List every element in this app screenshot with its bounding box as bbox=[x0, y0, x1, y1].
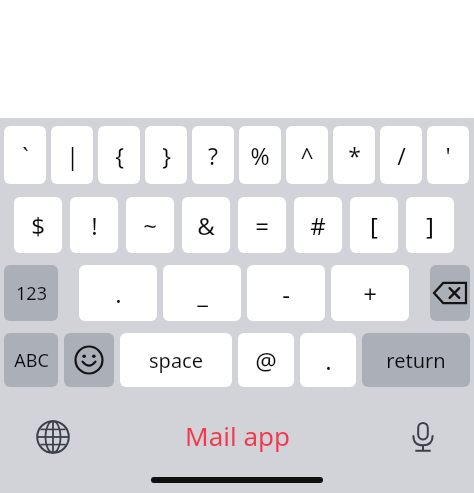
staticText: . bbox=[115, 277, 122, 310]
staticText: - bbox=[282, 277, 290, 310]
staticText: & bbox=[197, 209, 215, 242]
button[interactable]: ' bbox=[427, 126, 469, 184]
staticText: * bbox=[348, 140, 361, 171]
staticText: ` bbox=[22, 140, 29, 171]
staticText: % bbox=[250, 140, 270, 171]
staticText: { bbox=[115, 140, 124, 171]
button[interactable]: % bbox=[239, 126, 281, 184]
staticText: @ bbox=[255, 344, 277, 377]
button[interactable]: / bbox=[380, 126, 422, 184]
staticText: ' bbox=[445, 140, 451, 171]
button[interactable]: & bbox=[182, 197, 230, 253]
button[interactable]: Mail app bbox=[185, 418, 290, 453]
staticText: . bbox=[325, 344, 332, 377]
button[interactable]: - bbox=[247, 265, 325, 321]
staticText: _ bbox=[197, 277, 208, 310]
staticText: ^ bbox=[300, 140, 314, 171]
staticText: | bbox=[66, 140, 79, 171]
button[interactable]: . bbox=[79, 265, 157, 321]
staticText: + bbox=[363, 277, 377, 310]
button[interactable]: ] bbox=[406, 197, 454, 253]
button[interactable]: ~ bbox=[126, 197, 174, 253]
button[interactable]: [ bbox=[350, 197, 398, 253]
button[interactable]: { bbox=[98, 126, 140, 184]
button[interactable]: } bbox=[145, 126, 187, 184]
button[interactable]: Dictation bbox=[400, 414, 446, 460]
button[interactable]: # bbox=[294, 197, 342, 253]
staticText: ] bbox=[426, 209, 434, 242]
button[interactable]: . bbox=[300, 333, 356, 387]
button[interactable]: $ bbox=[14, 197, 62, 253]
staticText: / bbox=[397, 140, 406, 171]
button[interactable]: = bbox=[238, 197, 286, 253]
button[interactable]: ? bbox=[192, 126, 234, 184]
button[interactable]: Delete bbox=[430, 265, 470, 321]
button[interactable]: | bbox=[51, 126, 93, 184]
button[interactable]: ABC bbox=[4, 333, 58, 387]
button[interactable]: ! bbox=[70, 197, 118, 253]
button[interactable]: Emoji bbox=[64, 333, 114, 387]
staticText: ? bbox=[208, 140, 218, 171]
button[interactable]: return bbox=[362, 333, 470, 387]
staticText: 123 bbox=[16, 281, 47, 306]
staticText: } bbox=[162, 140, 171, 171]
staticText: return bbox=[386, 347, 446, 374]
staticText: [ bbox=[370, 209, 378, 242]
button[interactable]: + bbox=[331, 265, 409, 321]
staticText: ABC bbox=[14, 348, 49, 373]
button[interactable]: @ bbox=[238, 333, 294, 387]
staticText: = bbox=[255, 209, 269, 242]
button[interactable]: * bbox=[333, 126, 375, 184]
button[interactable]: _ bbox=[163, 265, 241, 321]
staticText: ! bbox=[91, 209, 98, 242]
button[interactable]: Next keyboard bbox=[30, 414, 76, 460]
button[interactable]: 123 bbox=[4, 265, 58, 321]
button[interactable]: ` bbox=[4, 126, 46, 184]
staticText: $ bbox=[31, 209, 45, 242]
button[interactable]: space bbox=[120, 333, 232, 387]
button[interactable]: ^ bbox=[286, 126, 328, 184]
staticText: # bbox=[310, 209, 326, 242]
staticText: ~ bbox=[143, 209, 157, 242]
staticText: space bbox=[149, 347, 203, 374]
